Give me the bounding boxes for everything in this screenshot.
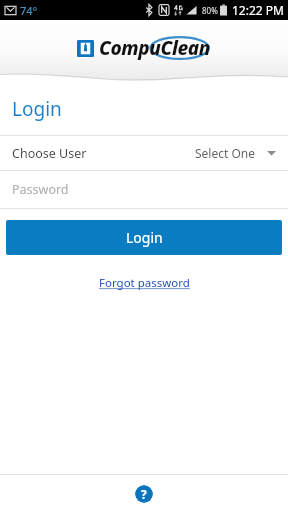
- button[interactable]: Password: [0, 171, 288, 208]
- staticText: CompuClean: [99, 35, 211, 61]
- button[interactable]: Help: [135, 485, 153, 503]
- staticText: Forgot password: [99, 275, 190, 291]
- staticText: Select One: [195, 145, 255, 161]
- staticText: 74°: [20, 3, 38, 18]
- button[interactable]: Login: [6, 220, 282, 255]
- staticText: Login: [12, 96, 62, 122]
- button[interactable]: Forgot password: [93, 273, 196, 293]
- button[interactable]: Choose User: [0, 136, 288, 170]
- staticText: Password: [12, 181, 69, 198]
- staticText: Choose User: [12, 145, 87, 162]
- staticText: 80%: [202, 5, 218, 16]
- staticText: Login: [126, 228, 163, 247]
- staticText: 12:22 PM: [232, 2, 284, 18]
- staticText: ?: [141, 486, 147, 502]
